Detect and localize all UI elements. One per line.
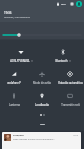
staticText: Localização [35, 103, 49, 106]
button[interactable]: Bluetooth [42, 40, 84, 62]
button[interactable]: Rotação automática [56, 62, 84, 84]
button[interactable]: vodafone P [0, 62, 28, 84]
staticText: 90% [61, 2, 66, 5]
staticText: domingo, 4 de Dezembro [4, 16, 31, 19]
staticText: Bluetooth [55, 59, 68, 62]
button[interactable]: Settings [69, 1, 75, 7]
button[interactable]: Facebook [2, 132, 81, 149]
button[interactable]: Lanterna [0, 84, 28, 106]
staticText: vodafone P [7, 81, 21, 84]
staticText: Facebook [13, 134, 24, 137]
staticText: ADSLFTVBRASIL [10, 59, 30, 62]
button[interactable]: ADSLFTVBRASIL [0, 40, 42, 62]
staticText: Modo de avião [33, 81, 51, 84]
staticText: Filipe Mendes e Diana Mira partilharam..… [13, 138, 56, 141]
staticText: 19:36 [4, 11, 12, 15]
button[interactable]: User profile [76, 1, 82, 7]
button[interactable]: Expand [40, 124, 45, 125]
staticText: Transmitir ecrã [61, 103, 80, 106]
button[interactable]: Localização [28, 84, 56, 106]
button[interactable]: Brightness [0, 22, 84, 40]
button[interactable]: Modo de avião [28, 62, 56, 84]
button[interactable]: Transmitir ecrã [56, 84, 84, 106]
staticText: 19:12 [73, 134, 79, 137]
staticText: Rotação automática [58, 81, 83, 84]
staticText: Lanterna [9, 103, 20, 106]
